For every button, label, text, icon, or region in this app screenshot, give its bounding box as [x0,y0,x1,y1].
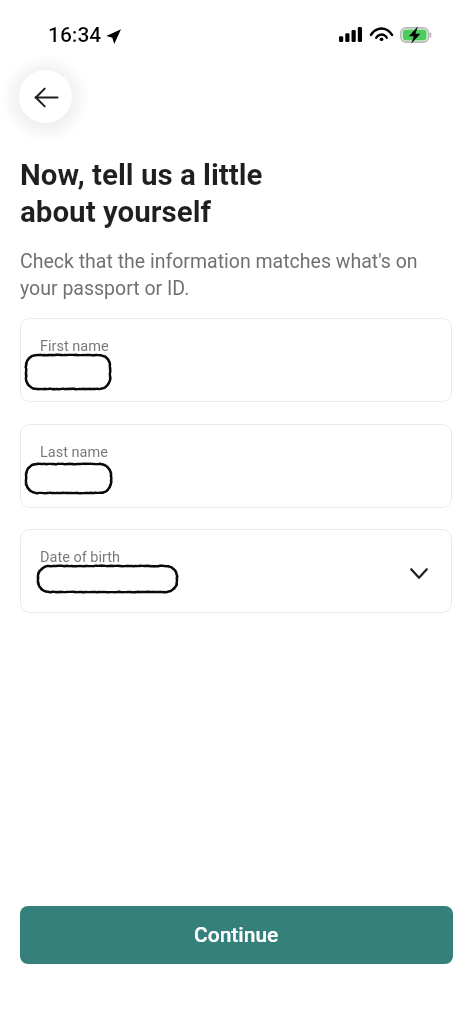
staticText: 16:34 [48,23,102,48]
button[interactable]: Continue [20,906,453,964]
staticText: Check that the information matches what'… [20,250,418,299]
staticText: Continue [194,923,279,948]
staticText: First name [40,338,109,355]
button[interactable]: Last name [20,424,452,508]
button[interactable]: Date of birth [20,529,452,613]
staticText: Now, tell us a little about yourself [20,158,263,229]
button[interactable]: Back [19,70,72,123]
staticText: Last name [40,444,108,461]
button[interactable]: Open date picker [395,549,443,597]
staticText: Date of birth [40,549,121,566]
button[interactable]: First name [20,318,452,402]
